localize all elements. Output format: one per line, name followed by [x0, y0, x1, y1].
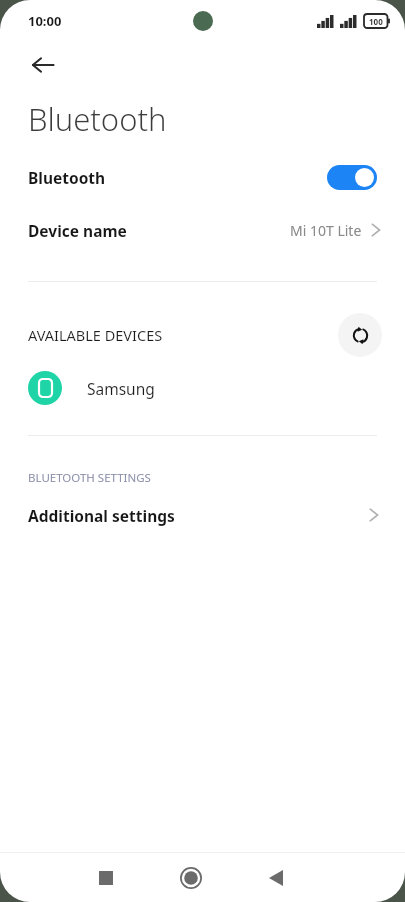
button[interactable]: Home — [167, 854, 215, 902]
button[interactable]: Back — [19, 42, 67, 88]
staticText: 10:00 — [28, 12, 62, 30]
staticText: Bluetooth — [28, 167, 106, 188]
button[interactable]: Samsung — [0, 359, 405, 417]
staticText: Samsung — [87, 378, 155, 399]
button[interactable]: Additional settings — [0, 491, 405, 539]
button[interactable]: Recents — [82, 854, 130, 902]
button[interactable]: Bluetooth — [0, 150, 405, 204]
staticText: Additional settings — [28, 505, 175, 526]
staticText: Device name — [28, 220, 127, 241]
button[interactable]: Device name — [0, 204, 405, 256]
button[interactable]: Refresh — [338, 313, 382, 357]
staticText: AVAILABLE DEVICES — [28, 325, 163, 345]
staticText: BLUETOOTH SETTINGS — [28, 470, 151, 486]
button[interactable]: Back — [252, 854, 300, 902]
staticText: 100 — [369, 16, 383, 27]
staticText: Mi 10T Lite — [290, 221, 362, 240]
staticText: Bluetooth — [28, 98, 167, 140]
